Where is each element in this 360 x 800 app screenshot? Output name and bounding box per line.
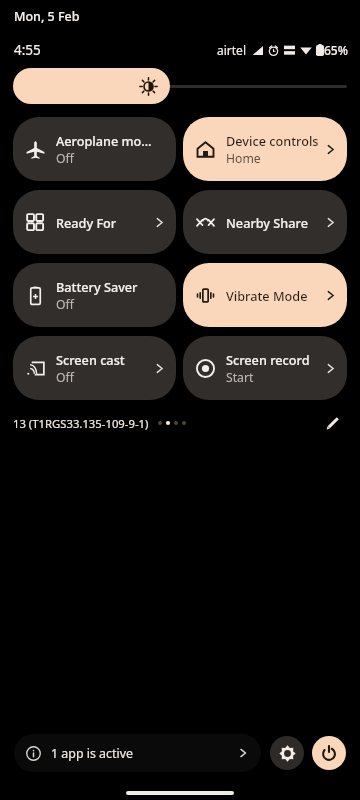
button[interactable]: Battery Saver: [13, 263, 176, 327]
staticText: airtel: [217, 42, 246, 58]
staticText: Vibrate Mode: [226, 287, 308, 304]
button[interactable]: 1 app is active: [14, 734, 261, 772]
staticText: Start: [226, 369, 254, 386]
button[interactable]: Screen record: [183, 336, 347, 400]
staticText: 65%: [324, 42, 348, 58]
staticText: 13 (T1RGS33.135-109-9-1): [13, 416, 149, 431]
button[interactable]: Ready For: [13, 190, 176, 254]
button[interactable]: Vibrate Mode: [183, 263, 347, 327]
staticText: Aeroplane mode: [56, 132, 153, 149]
staticText: Screen record: [226, 351, 310, 368]
staticText: 4:55: [14, 41, 41, 59]
staticText: Screen cast: [56, 351, 125, 368]
staticText: Off: [56, 369, 74, 386]
button[interactable]: Power: [312, 736, 346, 770]
button[interactable]: Settings: [270, 736, 304, 770]
button[interactable]: Edit tiles: [320, 410, 346, 436]
staticText: Home: [226, 150, 261, 167]
staticText: Battery Saver: [56, 278, 138, 295]
staticText: Off: [56, 296, 74, 313]
button[interactable]: Screen cast: [13, 336, 176, 400]
button[interactable]: Aeroplane mode: [13, 117, 176, 181]
staticText: Ready For: [56, 214, 117, 231]
button[interactable]: Nearby Share: [183, 190, 347, 254]
staticText: Device controls: [226, 132, 319, 149]
staticText: Off: [56, 150, 74, 167]
button[interactable]: Device controls: [183, 117, 347, 181]
staticText: Mon, 5 Feb: [14, 8, 80, 25]
staticText: 1 app is active: [51, 745, 133, 762]
staticText: Nearby Share: [226, 214, 308, 231]
button[interactable]: Brightness: [13, 68, 347, 104]
